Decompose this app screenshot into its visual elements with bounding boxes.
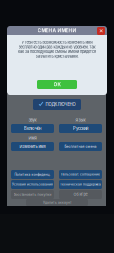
staticText: Изменить имя [19,144,45,149]
button[interactable]: Закрыть [97,26,107,35]
button[interactable]: Изменить имя [11,142,54,151]
staticText: Удалить аккаунт [43,201,71,204]
button[interactable]: Об игре [59,190,102,199]
button[interactable]: ОК [37,80,77,89]
staticText: Язык [75,118,85,122]
staticText: СМЕНА ИМЕНИ [37,28,76,33]
staticText: как за последующие смены имени придётся [18,49,96,54]
staticText: ✕ [99,28,103,34]
staticText: Политика конфиденц. [14,173,50,176]
button[interactable]: Техническая поддержка [59,180,102,189]
staticText: Об игре [73,192,87,197]
button[interactable]: Условия использования [11,180,54,189]
staticText: Техническая поддержка [60,183,101,186]
staticText: заплатить кристаллами. [35,54,78,59]
button[interactable]: ПОДКЛЮЧЕНО [33,99,81,110]
button[interactable]: Политика конфиденц. [11,170,54,179]
staticText: Пользоват. соглашение [61,173,100,176]
button[interactable]: Русский [59,124,102,133]
staticText: ОК [53,82,60,87]
staticText: У тебя есть возможность изменить имя [21,40,92,45]
button[interactable]: Удалить аккаунт [26,199,88,206]
staticText: Условия использования [12,183,53,186]
button[interactable]: Включён [11,124,54,133]
staticText: Бесплатная смена [64,144,96,149]
staticText: Русский [73,126,88,131]
staticText: Звук [28,118,36,122]
button[interactable]: Бесплатная смена [59,142,102,151]
button[interactable]: Восстановить покупки [11,190,54,199]
staticText: Включён [24,126,41,131]
button[interactable]: Пользоват. соглашение [59,170,102,179]
staticText: бесплатно один раз каждый из уровней, та… [18,45,95,49]
staticText: ПОДКЛЮЧЕНО [45,102,75,107]
staticText: Имя [28,136,36,140]
staticText: Восстановить покупки [13,193,51,196]
